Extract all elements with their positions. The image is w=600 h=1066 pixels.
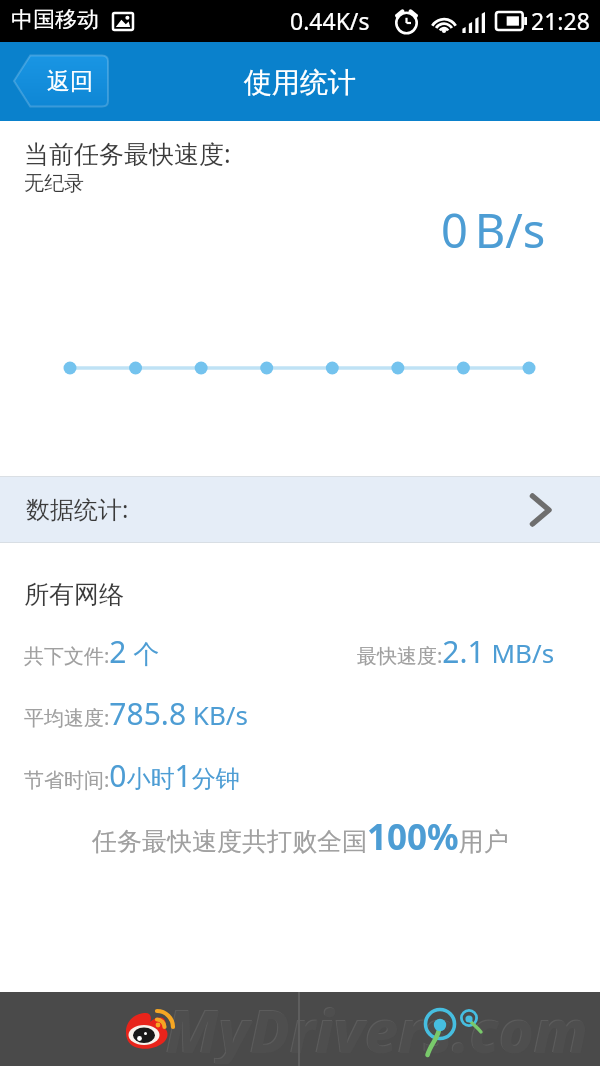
staticText: 最快速度:2.1 MB/s: [357, 631, 555, 672]
staticText: 任务最快速度共打败全国100%用户: [92, 813, 509, 861]
button[interactable]: 数据统计:: [0, 476, 600, 543]
button[interactable]: 返回: [13, 54, 109, 108]
staticText: 中国移动: [11, 6, 99, 34]
staticText: MyDrivers.com: [165, 989, 587, 1063]
staticText: 使用统计: [244, 65, 356, 100]
staticText: 节省时间:0小时1分钟: [24, 755, 240, 796]
staticText: 当前任务最快速度:: [24, 136, 231, 170]
staticText: 共下文件:2 个: [24, 631, 160, 672]
staticText: 21:28: [531, 5, 590, 36]
staticText: 0.44K/s: [290, 5, 370, 36]
staticText: 数据统计:: [26, 492, 129, 525]
staticText: MyDrivers.com: [166, 990, 588, 1064]
staticText: 所有网络: [24, 579, 124, 610]
staticText: 平均速度:785.8 KB/s: [24, 693, 248, 734]
staticText: 无纪录: [24, 171, 84, 196]
staticText: 返回: [47, 67, 93, 96]
staticText: 0 B/s: [441, 198, 546, 262]
